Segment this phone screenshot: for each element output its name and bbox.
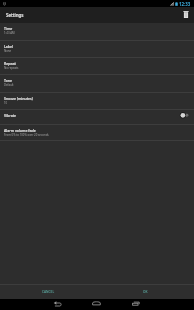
button[interactable]: Time <box>0 23 194 41</box>
button[interactable]: Back <box>39 299 76 310</box>
button[interactable]: Tone <box>0 75 194 93</box>
staticText: Alarm volume fade <box>4 128 36 133</box>
staticText: Time <box>4 26 13 31</box>
button[interactable]: Alarm volume fade <box>0 125 194 141</box>
staticText: Settings <box>6 12 24 18</box>
staticText: None <box>4 49 12 53</box>
staticText: CANCEL <box>42 290 55 294</box>
staticText: From 0% to 100% over 20 seconds <box>4 133 49 137</box>
staticText: Tone <box>4 78 13 83</box>
button[interactable]: CANCEL <box>0 285 97 299</box>
staticText: Repeat <box>4 61 16 66</box>
button[interactable]: Vibrate <box>0 110 194 125</box>
staticText: 12:33 <box>179 1 191 7</box>
button[interactable]: Recent apps <box>117 299 154 310</box>
staticText: Default <box>4 83 14 87</box>
staticText: Label <box>4 44 13 49</box>
staticText: Snooze (minutes) <box>4 96 33 101</box>
staticText: Vibrate <box>4 113 17 118</box>
button[interactable]: Repeat <box>0 58 194 75</box>
button[interactable]: OK <box>97 285 194 299</box>
staticText: 10 <box>4 101 8 105</box>
staticText: 1:43 AM <box>4 31 15 35</box>
button[interactable]: Home <box>78 299 115 310</box>
button[interactable]: Delete <box>178 7 194 23</box>
staticText: No repeats <box>4 66 19 70</box>
staticText: OK <box>143 290 148 294</box>
button[interactable]: Snooze (minutes) <box>0 93 194 110</box>
button[interactable]: Label <box>0 41 194 58</box>
